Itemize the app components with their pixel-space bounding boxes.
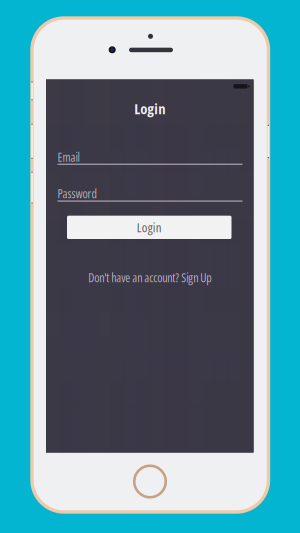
button[interactable]: Login bbox=[67, 216, 231, 239]
staticText: Don't have an account? Sign Up bbox=[88, 269, 211, 286]
button[interactable]: Home bbox=[134, 466, 166, 497]
staticText: Password bbox=[57, 185, 96, 202]
staticText: Login bbox=[137, 219, 162, 236]
staticText: Login bbox=[134, 98, 165, 118]
staticText: Email bbox=[57, 149, 79, 165]
button[interactable]: Don't have an account? Sign Up bbox=[46, 271, 253, 284]
